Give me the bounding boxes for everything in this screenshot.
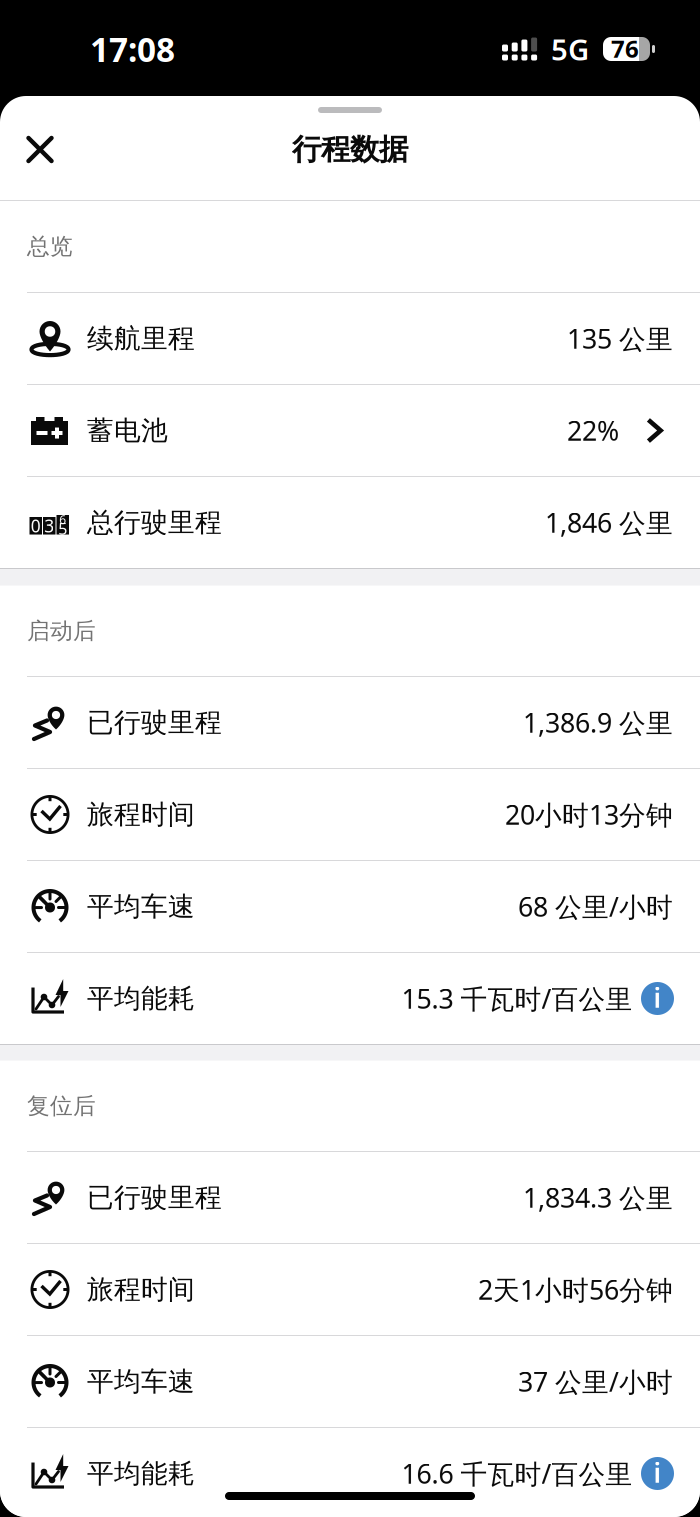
staticText: 复位后 (27, 1092, 96, 1120)
button[interactable]: 续航里程 (0, 293, 700, 384)
button[interactable]: 蓄电池 (0, 385, 700, 476)
button[interactable]: 平均能耗 (0, 953, 700, 1044)
staticText: i (653, 980, 661, 1015)
staticText: 1,834.3 公里 (523, 1180, 673, 1215)
staticText: 平均车速 (87, 1365, 195, 1398)
staticText: 20小时13分钟 (505, 797, 673, 832)
staticText: 17:08 (90, 27, 175, 71)
staticText: 5G (551, 29, 589, 68)
staticText: 行程数据 (292, 131, 408, 167)
staticText: 蓄电池 (87, 414, 168, 447)
staticText: 旅程时间 (87, 1273, 195, 1306)
staticText: 0 (31, 514, 41, 537)
staticText: 续航里程 (87, 322, 195, 355)
staticText: 3 (44, 514, 54, 537)
button[interactable]: 已行驶里程 (0, 677, 700, 768)
staticText: 平均能耗 (87, 982, 195, 1015)
staticText: 平均车速 (87, 890, 195, 923)
staticText: 76 (611, 33, 639, 64)
staticText: 16.6 千瓦时/百公里 (401, 1456, 632, 1491)
button[interactable]: 平均车速 (0, 861, 700, 952)
staticText: 6 (59, 511, 66, 527)
button[interactable]: 已行驶里程 (0, 1152, 700, 1243)
staticText: 已行驶里程 (87, 706, 222, 739)
staticText: 总览 (27, 233, 73, 260)
staticText: 37 公里/小时 (518, 1364, 673, 1399)
button[interactable]: 旅程时间 (0, 769, 700, 860)
staticText: 1,846 公里 (545, 505, 673, 540)
staticText: 2天1小时56分钟 (478, 1272, 673, 1307)
staticText: 平均能耗 (87, 1457, 195, 1490)
staticText: 旅程时间 (87, 798, 195, 831)
staticText: 5 (58, 518, 67, 539)
staticText: 68 公里/小时 (518, 889, 673, 924)
staticText: 启动后 (27, 617, 96, 645)
button[interactable]: 平均能耗 (0, 1428, 700, 1517)
button[interactable]: Close (14, 130, 66, 182)
staticText: 总行驶里程 (87, 506, 222, 539)
staticText: 135 公里 (567, 321, 673, 356)
button[interactable]: 0 (0, 477, 700, 568)
staticText: 22% (567, 413, 619, 448)
staticText: 15.3 千瓦时/百公里 (401, 981, 632, 1016)
button[interactable]: 平均车速 (0, 1336, 700, 1427)
button[interactable]: 旅程时间 (0, 1244, 700, 1335)
staticText: i (653, 1455, 661, 1490)
staticText: 已行驶里程 (87, 1181, 222, 1214)
staticText: 1,386.9 公里 (523, 705, 673, 740)
